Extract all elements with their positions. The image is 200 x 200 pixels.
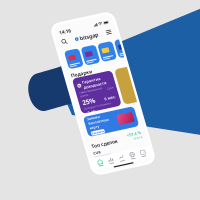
- staticText: bitsgap: [78, 50, 136, 71]
- staticText: 14:16: [23, 21, 59, 41]
- button[interactable]: Story: [177, 89, 200, 145]
- button[interactable]: Story: [21, 89, 67, 145]
- button[interactable]: Story: [125, 89, 171, 145]
- button[interactable]: Story: [73, 89, 119, 145]
